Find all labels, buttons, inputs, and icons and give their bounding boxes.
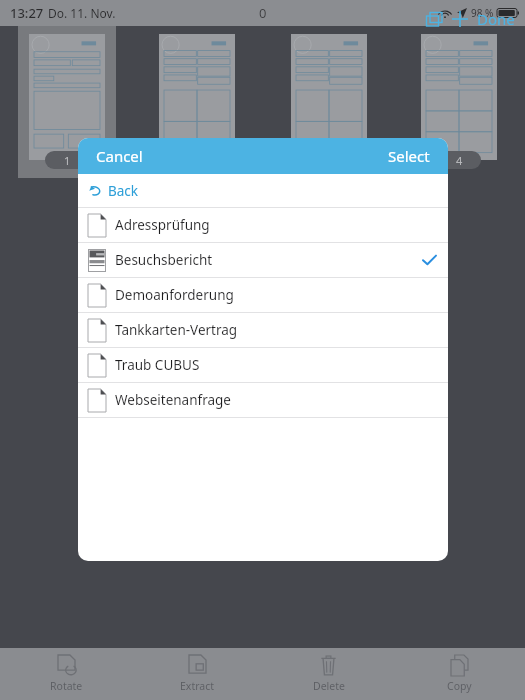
- button[interactable]: Page thumbnail: [410, 26, 508, 178]
- button[interactable]: Rotate: [0, 651, 132, 697]
- button[interactable]: Add: [447, 6, 473, 32]
- staticText: Delete: [313, 679, 345, 693]
- button[interactable]: Besuchsbericht: [78, 243, 448, 277]
- staticText: Adressprüfung: [115, 216, 423, 234]
- staticText: 13:27: [10, 4, 44, 22]
- staticText: Done: [477, 9, 515, 29]
- staticText: 0: [259, 4, 267, 22]
- button[interactable]: Pages: [421, 6, 447, 32]
- button[interactable]: Back: [78, 174, 448, 207]
- button[interactable]: Traub CUBUS: [78, 348, 448, 382]
- staticText: 98 %: [471, 6, 494, 20]
- button[interactable]: Page thumbnail: [18, 26, 116, 178]
- staticText: Back: [108, 182, 139, 200]
- button[interactable]: Page thumbnail: [280, 26, 378, 178]
- button[interactable]: Page thumbnail: [148, 26, 246, 178]
- staticText: Webseitenanfrage: [115, 391, 423, 409]
- staticText: Tankkarten-Vertrag: [115, 321, 423, 339]
- button[interactable]: Extract: [132, 651, 263, 697]
- button[interactable]: Adressprüfung: [78, 208, 448, 242]
- staticText: Extract: [180, 679, 215, 693]
- staticText: Traub CUBUS: [115, 356, 423, 374]
- staticText: 4: [456, 153, 463, 168]
- button[interactable]: Done: [473, 9, 519, 29]
- button[interactable]: Demoanforderung: [78, 278, 448, 312]
- staticText: Demoanforderung: [115, 286, 423, 304]
- staticText: Besuchsbericht: [115, 251, 423, 269]
- button[interactable]: Webseitenanfrage: [78, 383, 448, 417]
- button[interactable]: Tankkarten-Vertrag: [78, 313, 448, 347]
- staticText: Rotate: [50, 679, 83, 693]
- staticText: Do. 11. Nov.: [48, 5, 116, 21]
- button[interactable]: Select: [370, 140, 448, 172]
- staticText: 1: [64, 153, 71, 168]
- button[interactable]: Delete: [263, 651, 394, 697]
- staticText: Select: [388, 146, 430, 166]
- button[interactable]: Copy: [394, 651, 525, 697]
- staticText: Copy: [447, 679, 472, 693]
- staticText: Cancel: [96, 146, 143, 166]
- button[interactable]: Cancel: [78, 140, 161, 172]
